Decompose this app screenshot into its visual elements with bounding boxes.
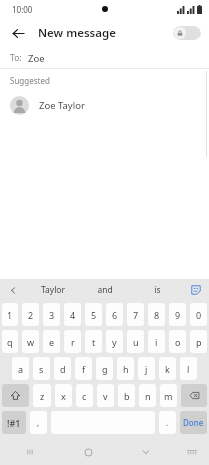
- staticText: j: [145, 363, 148, 375]
- button[interactable]: z: [33, 384, 51, 407]
- button[interactable]: Hide keyboard: [117, 439, 175, 465]
- button[interactable]: Keyboard layout: [175, 439, 209, 465]
- staticText: Zoe Taylor: [39, 99, 85, 112]
- button[interactable]: f: [75, 357, 92, 380]
- button[interactable]: 8: [148, 303, 165, 326]
- button[interactable]: 0: [190, 303, 207, 326]
- button[interactable]: Zoe Taylor: [0, 92, 209, 118]
- staticText: p: [196, 336, 202, 348]
- staticText: d: [60, 363, 66, 375]
- staticText: 4: [70, 309, 76, 321]
- button[interactable]: To:: [0, 48, 209, 68]
- button[interactable]: w: [22, 330, 39, 353]
- staticText: g: [102, 363, 108, 375]
- staticText: r: [71, 336, 75, 348]
- button[interactable]: Taylor: [26, 279, 79, 301]
- button[interactable]: e: [43, 330, 60, 353]
- staticText: y: [112, 336, 117, 348]
- staticText: 0: [196, 309, 202, 321]
- staticText: is: [154, 284, 161, 296]
- staticText: e: [49, 336, 55, 348]
- button[interactable]: 3: [43, 303, 60, 326]
- staticText: b: [124, 390, 130, 402]
- button[interactable]: b: [118, 384, 135, 407]
- staticText: x: [61, 390, 66, 402]
- button[interactable]: o: [169, 330, 186, 353]
- button[interactable]: t: [85, 330, 102, 353]
- staticText: Suggested: [10, 75, 50, 86]
- button[interactable]: 4: [64, 303, 81, 326]
- staticText: 1: [7, 309, 13, 321]
- staticText: and: [97, 284, 113, 296]
- staticText: u: [133, 336, 139, 348]
- button[interactable]: is: [131, 279, 183, 301]
- button[interactable]: g: [96, 357, 113, 380]
- staticText: s: [39, 363, 44, 375]
- button[interactable]: 6: [106, 303, 123, 326]
- button[interactable]: Back: [6, 21, 30, 45]
- button[interactable]: l: [180, 357, 197, 380]
- staticText: i: [155, 336, 158, 348]
- button[interactable]: c: [76, 384, 93, 407]
- button[interactable]: .: [159, 411, 176, 434]
- staticText: 8: [154, 309, 160, 321]
- button[interactable]: 2: [22, 303, 39, 326]
- staticText: z: [40, 390, 45, 402]
- button[interactable]: 7: [127, 303, 144, 326]
- button[interactable]: Secure messaging toggle: [173, 26, 201, 40]
- staticText: m: [164, 390, 173, 402]
- staticText: Taylor: [41, 284, 65, 296]
- button[interactable]: ,: [30, 411, 47, 434]
- button[interactable]: 1: [2, 303, 18, 326]
- staticText: ,: [37, 417, 40, 428]
- staticText: .: [166, 417, 169, 428]
- staticText: l: [187, 363, 190, 375]
- staticText: To:: [10, 52, 22, 64]
- staticText: v: [103, 390, 108, 402]
- staticText: a: [18, 363, 24, 375]
- staticText: Zoe: [28, 52, 45, 65]
- button[interactable]: 9: [169, 303, 186, 326]
- button[interactable]: y: [106, 330, 123, 353]
- button[interactable]: s: [33, 357, 50, 380]
- button[interactable]: Stickers: [183, 279, 209, 301]
- staticText: 5: [91, 309, 97, 321]
- staticText: New message: [38, 25, 116, 41]
- button[interactable]: v: [97, 384, 114, 407]
- button[interactable]: a: [12, 357, 29, 380]
- button[interactable]: Done: [180, 411, 207, 434]
- button[interactable]: h: [117, 357, 134, 380]
- button[interactable]: p: [190, 330, 207, 353]
- button[interactable]: !#1: [2, 411, 26, 434]
- button[interactable]: j: [138, 357, 155, 380]
- button[interactable]: 5: [85, 303, 102, 326]
- button[interactable]: n: [139, 384, 156, 407]
- staticText: o: [175, 336, 181, 348]
- staticText: 10:00: [12, 4, 33, 15]
- button[interactable]: Recents: [0, 439, 59, 465]
- button[interactable]: Shift: [2, 384, 29, 407]
- button[interactable]: and: [79, 279, 131, 301]
- button[interactable]: d: [54, 357, 71, 380]
- button[interactable]: i: [148, 330, 165, 353]
- staticText: c: [82, 390, 87, 402]
- button[interactable]: Home: [59, 439, 117, 465]
- button[interactable]: m: [160, 384, 177, 407]
- button[interactable]: Backspace: [181, 384, 207, 407]
- button[interactable]: x: [55, 384, 72, 407]
- staticText: !#1: [7, 417, 21, 429]
- staticText: 3: [49, 309, 55, 321]
- button[interactable]: Previous suggestions: [0, 279, 26, 301]
- button[interactable]: r: [64, 330, 81, 353]
- button[interactable]: u: [127, 330, 144, 353]
- staticText: k: [165, 363, 170, 375]
- staticText: Done: [183, 417, 204, 428]
- staticText: 6: [112, 309, 118, 321]
- button[interactable]: k: [159, 357, 176, 380]
- staticText: w: [27, 336, 35, 348]
- staticText: h: [123, 363, 129, 375]
- staticText: 7: [133, 309, 139, 321]
- button[interactable]: q: [2, 330, 18, 353]
- staticText: 9: [175, 309, 181, 321]
